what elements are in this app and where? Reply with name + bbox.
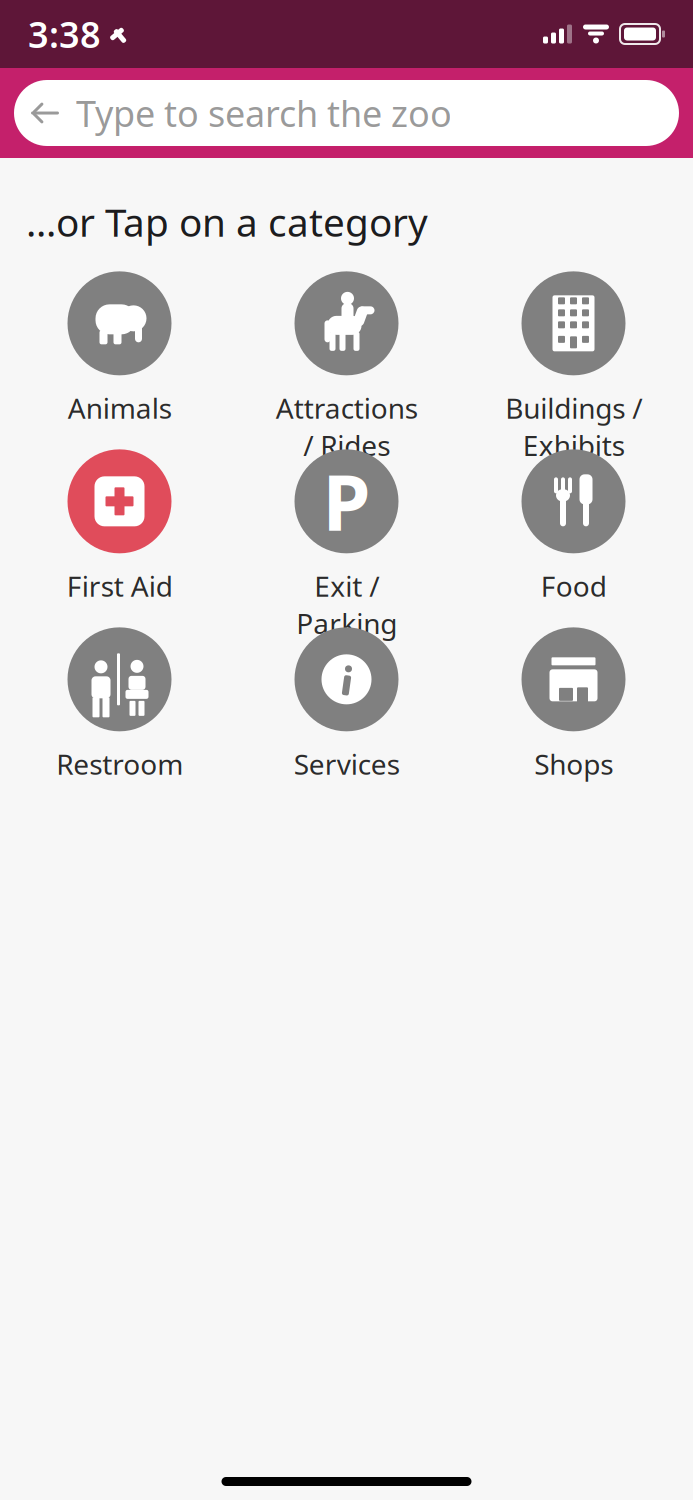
- staticText: Services: [293, 745, 399, 782]
- staticText: Type to search the zoo: [76, 89, 452, 137]
- button[interactable]: First Aid: [6, 449, 233, 609]
- staticText: Animals: [67, 389, 171, 426]
- staticText: First Aid: [66, 567, 172, 604]
- staticText: Shops: [534, 745, 613, 782]
- button[interactable]: Animals: [6, 271, 233, 431]
- staticText: 3:38: [28, 10, 101, 58]
- button[interactable]: P: [233, 449, 460, 609]
- button[interactable]: Attractions / Rides: [233, 271, 460, 431]
- staticText: Attractions / Rides: [275, 389, 417, 464]
- staticText: ...or Tap on a category: [26, 196, 428, 247]
- staticText: P: [322, 450, 370, 553]
- button[interactable]: Buildings / Exhibits: [460, 271, 687, 431]
- button[interactable]: Restroom: [6, 627, 233, 787]
- button[interactable]: Back: [14, 80, 76, 146]
- staticText: Exit / Parking: [296, 567, 397, 642]
- staticText: Buildings / Exhibits: [505, 389, 642, 464]
- button[interactable]: Shops: [460, 627, 687, 787]
- button[interactable]: Food: [460, 449, 687, 609]
- button[interactable]: Services: [233, 627, 460, 787]
- staticText: Food: [540, 567, 606, 604]
- staticText: Restroom: [56, 745, 183, 782]
